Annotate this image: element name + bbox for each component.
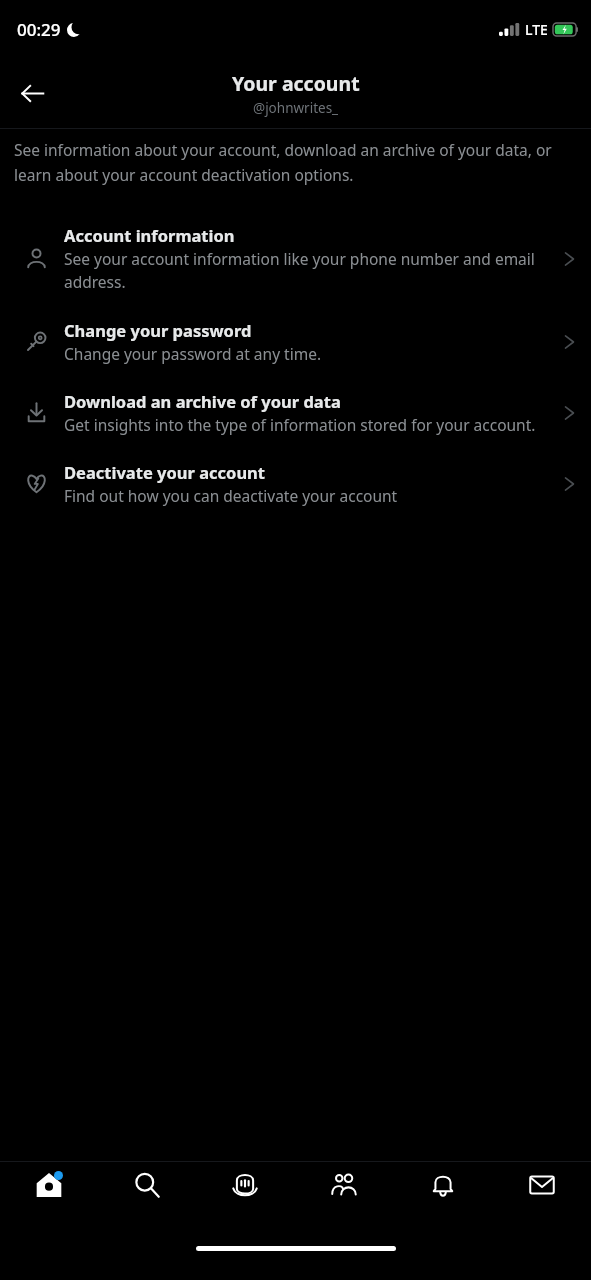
staticText: Your account bbox=[232, 70, 360, 97]
staticText: LTE bbox=[525, 20, 548, 39]
staticText: Download an archive of your data bbox=[64, 390, 341, 412]
staticText: See your account information like your p… bbox=[64, 248, 553, 293]
button[interactable]: Account information bbox=[0, 211, 591, 306]
button[interactable]: Home bbox=[0, 1162, 98, 1226]
button[interactable]: Messages bbox=[492, 1162, 591, 1226]
staticText: See information about your account, down… bbox=[14, 139, 575, 185]
button[interactable]: Download an archive of your data bbox=[0, 377, 591, 448]
staticText: Find out how you can deactivate your acc… bbox=[64, 485, 398, 506]
staticText: Change your password at any time. bbox=[64, 343, 322, 364]
staticText: @johnwrites_ bbox=[253, 99, 339, 117]
button[interactable]: Back bbox=[8, 69, 56, 117]
staticText: Deactivate your account bbox=[64, 461, 265, 483]
staticText: Get insights into the type of informatio… bbox=[64, 414, 536, 435]
button[interactable]: Search bbox=[98, 1162, 196, 1226]
button[interactable]: Notifications bbox=[393, 1162, 492, 1226]
staticText: Change your password bbox=[64, 319, 252, 341]
button[interactable]: Change your password bbox=[0, 306, 591, 377]
button[interactable]: Grok bbox=[196, 1162, 294, 1226]
staticText: 00:29 bbox=[17, 18, 61, 41]
staticText: Account information bbox=[64, 224, 235, 246]
button[interactable]: Communities bbox=[294, 1162, 393, 1226]
button[interactable]: Deactivate your account bbox=[0, 448, 591, 519]
